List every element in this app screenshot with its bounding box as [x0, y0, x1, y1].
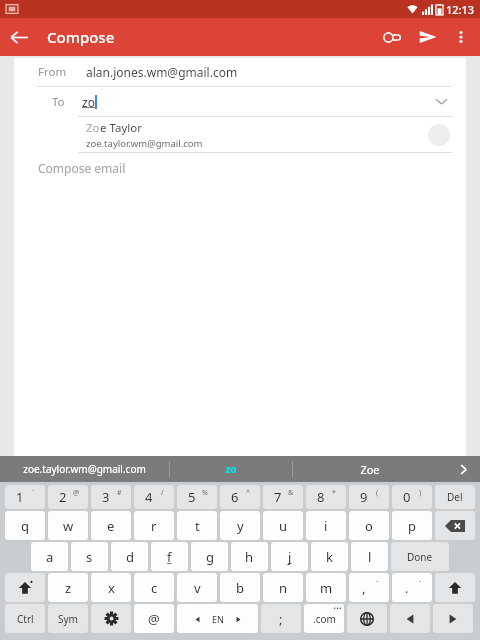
button[interactable]: @ [134, 604, 174, 633]
button[interactable]: 7 [263, 485, 303, 509]
button[interactable]: s [71, 542, 108, 571]
button[interactable]: 8 [306, 485, 346, 509]
button[interactable]: g [191, 542, 228, 571]
button[interactable]: To [14, 87, 466, 116]
staticText: y [237, 517, 244, 535]
button[interactable]: More suggestions [446, 456, 480, 482]
button[interactable]: e [91, 511, 131, 540]
button[interactable]: .com [304, 604, 344, 633]
button[interactable]: Back [0, 18, 38, 56]
button[interactable]: Compose email [14, 153, 466, 183]
staticText: 12:13 [446, 2, 475, 17]
button[interactable]: Shift [5, 573, 45, 602]
staticText: zoe.taylor.wm@gmail.com [86, 137, 203, 150]
staticText: Compose [47, 27, 115, 47]
button[interactable]: l [351, 542, 388, 571]
staticText: 6 [231, 488, 239, 506]
staticText: 9 [360, 488, 368, 506]
staticText: 8 [317, 488, 325, 506]
button[interactable]: Done [391, 542, 449, 571]
staticText: - [419, 576, 422, 586]
staticText: Zo [86, 120, 100, 136]
button[interactable]: Expand recipients [426, 87, 456, 116]
button[interactable]: zoe.taylor.wm@gmail.com [0, 456, 169, 482]
button[interactable]: Settings [91, 604, 131, 633]
button[interactable]: v [177, 573, 217, 602]
button[interactable]: u [263, 511, 303, 540]
button[interactable]: Attach [374, 19, 410, 55]
button[interactable]: 1 [5, 485, 45, 509]
staticText: ( [376, 488, 379, 498]
button[interactable]: 9 [349, 485, 389, 509]
staticText: Sym [58, 612, 78, 626]
staticText: Zoe [360, 462, 380, 477]
button[interactable]: . [392, 573, 432, 602]
button[interactable]: o [349, 511, 389, 540]
button[interactable]: Move left [390, 604, 430, 633]
button[interactable]: From [14, 58, 466, 86]
button[interactable]: zo [170, 456, 292, 482]
button[interactable]: Contact avatar [428, 124, 450, 146]
button[interactable]: a [31, 542, 68, 571]
staticText: 4 [145, 488, 153, 506]
button[interactable]: 4 [134, 485, 174, 509]
button[interactable]: n [263, 573, 303, 602]
button[interactable]: 3 [91, 485, 131, 509]
button[interactable]: Ctrl [5, 604, 45, 633]
button[interactable]: h [231, 542, 268, 571]
button[interactable]: Shift [435, 573, 475, 602]
button[interactable]: More options [446, 22, 476, 52]
button[interactable]: j [271, 542, 308, 571]
staticText: @ [73, 488, 80, 498]
button[interactable]: d [111, 542, 148, 571]
button[interactable]: w [48, 511, 88, 540]
button[interactable]: EN [177, 604, 258, 633]
button[interactable]: Send [410, 19, 446, 55]
button[interactable]: q [5, 511, 45, 540]
staticText: q [21, 517, 29, 535]
staticText: s [86, 548, 93, 566]
staticText: .com [313, 612, 336, 626]
button[interactable]: y [220, 511, 260, 540]
button[interactable]: m [306, 573, 346, 602]
button[interactable]: , [349, 573, 389, 602]
button[interactable]: Del [435, 485, 475, 509]
button[interactable]: z [48, 573, 88, 602]
button[interactable]: Change language [347, 604, 387, 633]
button[interactable]: 2 [48, 485, 88, 509]
staticText: k [326, 548, 333, 566]
button[interactable]: b [220, 573, 260, 602]
staticText: * [332, 488, 336, 498]
staticText: a [46, 548, 54, 566]
button[interactable]: x [91, 573, 131, 602]
staticText: p [408, 517, 416, 535]
button[interactable]: k [311, 542, 348, 571]
staticText: / [161, 488, 164, 498]
button[interactable]: Backspace [435, 511, 475, 540]
staticText: From [38, 64, 67, 80]
staticText: Ctrl [17, 612, 34, 626]
button[interactable]: Zo [14, 117, 466, 152]
staticText: 1 [16, 488, 24, 506]
button[interactable]: p [392, 511, 432, 540]
button[interactable]: Zoe [293, 456, 446, 482]
staticText: alan.jones.wm@gmail.com [86, 64, 238, 80]
button[interactable]: ; [261, 604, 301, 633]
button[interactable]: Move right [433, 604, 473, 633]
button[interactable]: i [306, 511, 346, 540]
button[interactable]: 0 [392, 485, 432, 509]
button[interactable]: 5 [177, 485, 217, 509]
button[interactable]: f [151, 542, 188, 571]
staticText: w [63, 517, 74, 535]
staticText: c [151, 579, 158, 597]
staticText: ; [279, 610, 283, 628]
button[interactable]: r [134, 511, 174, 540]
staticText: EN [212, 613, 224, 625]
staticText: b [236, 579, 244, 597]
staticText: j [288, 548, 292, 566]
button[interactable]: c [134, 573, 174, 602]
staticText: x [108, 579, 115, 597]
button[interactable]: t [177, 511, 217, 540]
button[interactable]: Sym [48, 604, 88, 633]
button[interactable]: 6 [220, 485, 260, 509]
